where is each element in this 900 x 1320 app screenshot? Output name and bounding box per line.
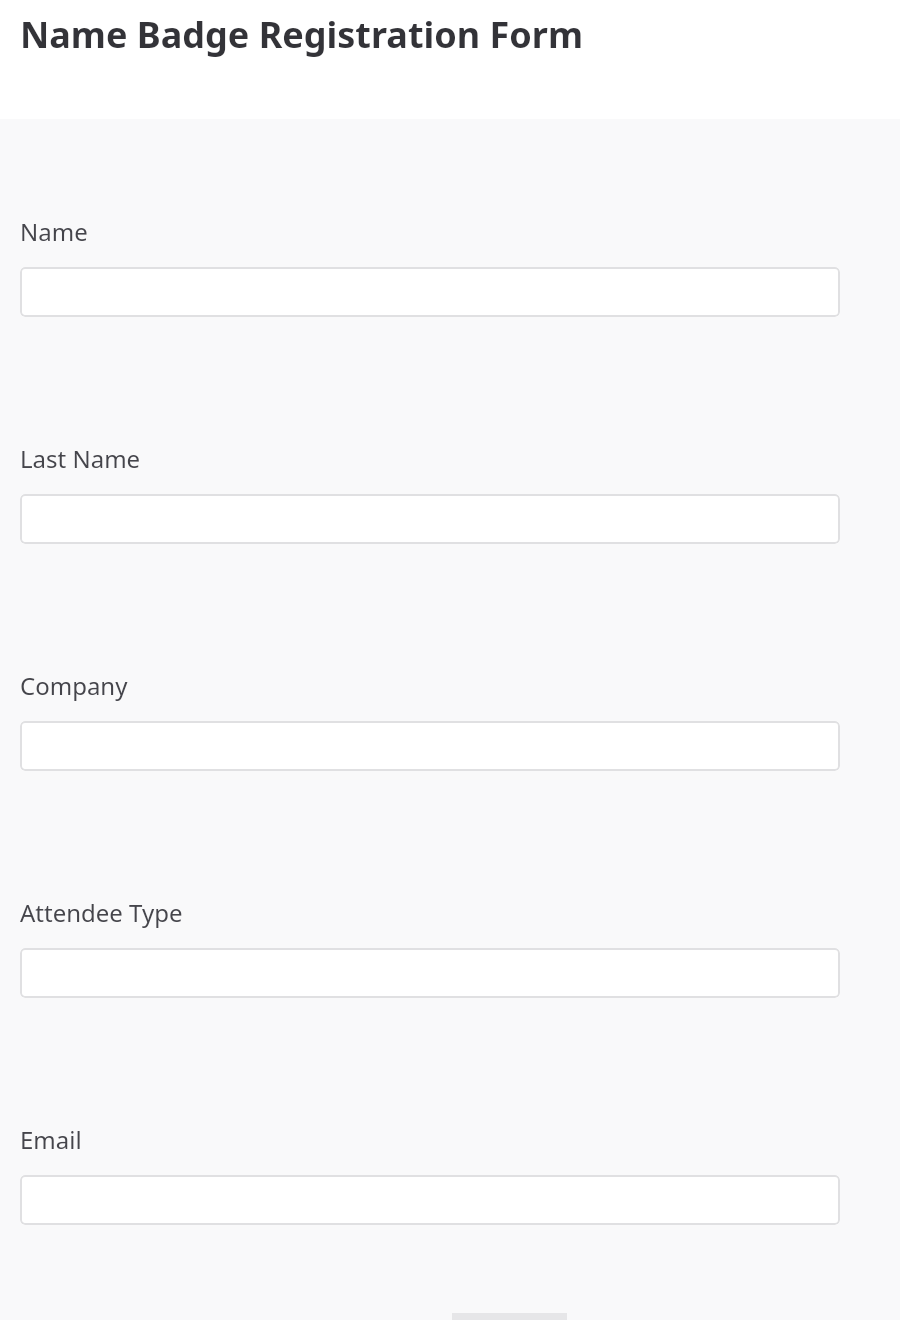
staticText: Name Badge Registration Form — [20, 10, 584, 59]
button[interactable] — [20, 494, 840, 544]
button[interactable] — [20, 267, 840, 317]
button[interactable] — [20, 1175, 840, 1225]
staticText: Attendee Type — [20, 896, 183, 929]
staticText: Name — [20, 215, 88, 248]
staticText: Company — [20, 669, 128, 702]
button[interactable] — [20, 721, 840, 771]
button[interactable] — [20, 948, 840, 998]
staticText: Email — [20, 1123, 82, 1156]
staticText: Last Name — [20, 442, 141, 475]
